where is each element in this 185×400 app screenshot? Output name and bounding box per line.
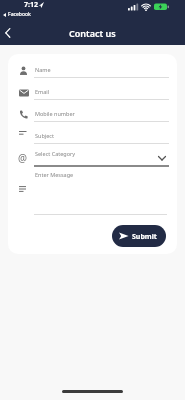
staticText: @	[18, 151, 27, 165]
staticText: Select Category	[35, 150, 76, 157]
staticText: Submit	[132, 232, 157, 242]
staticText: Subject	[35, 132, 54, 139]
button[interactable]	[18, 61, 169, 79]
staticText: Mobile number	[35, 110, 75, 117]
staticText: Email	[35, 88, 50, 95]
button[interactable]	[18, 127, 169, 145]
staticText: Enter Message	[35, 171, 74, 178]
staticText: 7:12	[24, 0, 38, 10]
button[interactable]	[18, 83, 169, 101]
button[interactable]	[18, 168, 169, 216]
button[interactable]	[0, 24, 20, 44]
staticText: Facebook	[8, 11, 31, 18]
staticText: Name	[35, 66, 51, 73]
staticText: Contact us	[69, 27, 116, 39]
button[interactable]: Submit	[112, 225, 166, 247]
button[interactable]: Select Category	[34, 150, 169, 166]
button[interactable]	[18, 105, 169, 123]
